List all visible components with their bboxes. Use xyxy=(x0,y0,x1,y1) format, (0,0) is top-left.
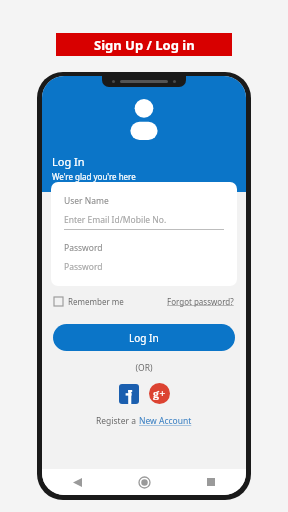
staticText: Remember me xyxy=(68,296,124,307)
button[interactable]: Remember me xyxy=(54,296,124,307)
button[interactable]: Sign in with Google Plus xyxy=(149,383,170,404)
button[interactable]: Sign Up / Log in xyxy=(56,33,232,56)
staticText: Register a xyxy=(96,415,139,427)
staticText: (OR) xyxy=(42,362,246,374)
staticText: g+ xyxy=(153,386,166,401)
button[interactable]: Back xyxy=(68,473,86,491)
staticText: New Account xyxy=(139,415,192,427)
button[interactable]: Home xyxy=(135,473,153,491)
staticText: We're glad you're here xyxy=(52,171,136,182)
button[interactable]: Forgot password? xyxy=(167,296,234,307)
button[interactable]: Register a xyxy=(42,415,246,427)
staticText: Log In xyxy=(52,154,85,169)
staticText: User Name xyxy=(64,195,109,207)
staticText: Enter Email Id/Mobile No. xyxy=(64,214,167,226)
button[interactable]: Sign in with Facebook xyxy=(119,384,139,404)
staticText: Forgot password? xyxy=(167,296,234,307)
button[interactable]: Recent apps xyxy=(202,473,220,491)
staticText: Log In xyxy=(129,331,159,345)
staticText: Password xyxy=(64,261,103,273)
button[interactable]: Log In xyxy=(53,324,235,351)
staticText: Sign Up / Log in xyxy=(94,36,195,54)
staticText: Password xyxy=(64,242,103,254)
